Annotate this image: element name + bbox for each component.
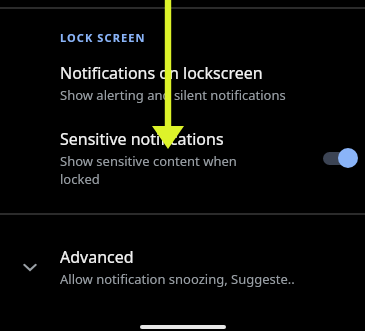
button[interactable]: Sensitive notifications <box>0 128 365 188</box>
staticText: Show sensitive content when locked <box>60 152 260 188</box>
staticText: Advanced <box>60 246 134 268</box>
button[interactable]: Expand Advanced <box>0 246 365 288</box>
staticText: LOCK SCREEN <box>60 30 146 45</box>
staticText: Show alerting and silent notifications <box>60 86 286 104</box>
other: Expand Advanced <box>18 255 42 279</box>
staticText: Allow notification snoozing, Suggeste.. <box>60 270 295 288</box>
button[interactable]: Notifications on lockscreen <box>0 62 365 104</box>
button[interactable]: Sensitive notifications toggle <box>325 143 365 173</box>
staticText: Notifications on lockscreen <box>60 62 263 84</box>
staticText: Sensitive notifications <box>60 128 224 150</box>
